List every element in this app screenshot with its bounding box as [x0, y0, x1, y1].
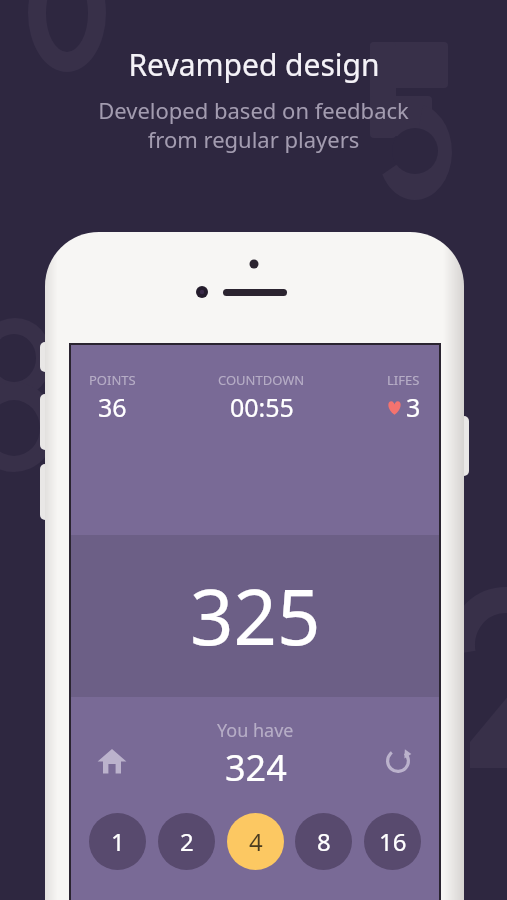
staticText: LIFES	[387, 371, 420, 389]
staticText: Revamped design	[128, 44, 380, 85]
staticText: 3	[406, 390, 421, 424]
staticText: 325	[190, 564, 321, 668]
staticText: 2	[180, 825, 194, 858]
button[interactable]: Restart	[375, 738, 421, 784]
staticText: 36	[98, 390, 127, 424]
button[interactable]: 1	[89, 813, 146, 870]
staticText: 00:55	[230, 390, 294, 424]
button[interactable]: 16	[364, 813, 421, 870]
staticText: 8	[317, 825, 331, 858]
staticText: 1	[111, 825, 125, 858]
staticText: Developed based on feedback from regular…	[98, 95, 409, 154]
staticText: 324	[225, 743, 287, 792]
staticText: POINTS	[89, 371, 136, 389]
staticText: COUNTDOWN	[218, 371, 305, 389]
button[interactable]: Home	[89, 738, 135, 784]
staticText: 16	[379, 825, 407, 858]
staticText: You have	[217, 718, 294, 743]
staticText: 4	[249, 825, 263, 858]
button[interactable]: 4	[227, 813, 284, 870]
button[interactable]: 2	[158, 813, 215, 870]
button[interactable]: 8	[295, 813, 352, 870]
